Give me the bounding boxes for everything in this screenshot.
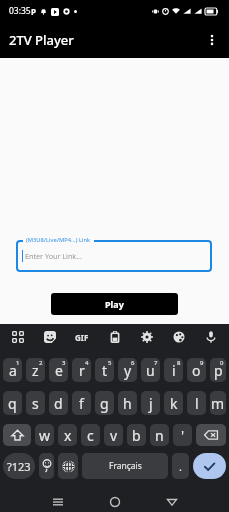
button[interactable]: Settings [136,326,158,348]
staticText: GIF [75,332,89,343]
staticText: o [192,361,201,380]
button[interactable]: x [58,424,77,446]
staticText: l [195,394,199,413]
button[interactable]: q [3,391,22,415]
button[interactable]: a [3,358,22,382]
button[interactable]: y [118,358,137,382]
staticText: P [31,6,36,17]
button[interactable]: s [26,391,45,415]
button[interactable]: Français [82,453,168,479]
staticText: ' [181,426,185,445]
staticText: 8 [177,359,181,367]
staticText: q [8,394,17,413]
button[interactable]: i [164,358,183,382]
button[interactable]: t [95,358,114,382]
staticText: e [55,361,63,380]
button[interactable]: r [72,358,91,382]
button[interactable]: m [210,391,226,415]
staticText: p [214,361,223,380]
staticText: r [79,361,85,380]
staticText: y [124,361,132,380]
button[interactable]: Recent apps [42,491,73,512]
staticText: n [155,426,164,445]
staticText: 4 [85,359,89,367]
button[interactable] [3,424,31,446]
staticText: 0 [220,359,224,367]
button[interactable]: Back [156,491,187,512]
staticText: v [110,426,118,445]
staticText: 6 [131,359,135,367]
button[interactable]: ?123 [3,453,35,479]
staticText: s [32,394,39,413]
staticText: a [9,361,17,380]
staticText: g [100,394,109,413]
button[interactable]: z [26,358,45,382]
button[interactable]: l [187,391,206,415]
staticText: Enter Your Link... [25,251,82,261]
button[interactable]: k [164,391,183,415]
button[interactable]: j [141,391,160,415]
button[interactable]: h [118,391,137,415]
button[interactable]: More options [195,23,229,57]
button[interactable]: w [35,424,54,446]
button[interactable]: n [150,424,169,446]
staticText: 1 [16,359,20,367]
staticText: d [54,394,63,413]
staticText: m [211,394,225,413]
button[interactable]: Themes [168,326,190,348]
button[interactable]: o [187,358,206,382]
staticText: x [64,426,72,445]
button[interactable]: p [210,358,226,382]
button[interactable]: GIF [71,326,93,348]
button[interactable] [39,453,54,479]
button[interactable]: b [127,424,146,446]
button[interactable]: Apps [7,326,29,348]
button[interactable]: d [49,391,68,415]
button[interactable]: . [172,453,189,479]
button[interactable]: Home [99,491,130,512]
staticText: h [123,394,132,413]
staticText: j [149,394,153,413]
button[interactable]: Enter Your Link... [16,240,212,272]
button[interactable]: ' [173,424,192,446]
staticText: Play [105,298,124,310]
staticText: . [179,459,182,474]
staticText: 2 [39,359,43,367]
button[interactable]: Voice input [200,326,222,348]
button[interactable] [196,424,226,446]
button[interactable]: e [49,358,68,382]
staticText: 9 [200,359,204,367]
button[interactable]: u [141,358,160,382]
button[interactable] [193,453,226,479]
button[interactable]: Play [51,293,178,315]
staticText: f [79,394,84,413]
staticText: 3 [62,359,66,367]
staticText: i [172,361,176,380]
staticText: w [39,426,51,445]
button[interactable]: c [81,424,100,446]
staticText: z [32,361,39,380]
staticText: 2TV Player [9,31,74,49]
button[interactable]: f [72,391,91,415]
button[interactable] [58,453,78,479]
staticText: ?123 [7,459,31,474]
staticText: 5 [108,359,112,367]
button[interactable]: g [95,391,114,415]
staticText: b [132,426,141,445]
button[interactable]: v [104,424,123,446]
button[interactable]: Clipboard [104,326,126,348]
staticText: t [102,361,108,380]
staticText: 03:35 [9,5,31,17]
staticText: u [146,361,155,380]
button[interactable]: Stickers [39,326,61,348]
staticText: k [170,394,178,413]
staticText: (M3U8/Live/MP4...) Link [26,236,91,244]
staticText: 7 [154,359,158,367]
staticText: c [87,426,94,445]
staticText: Français [109,460,142,472]
